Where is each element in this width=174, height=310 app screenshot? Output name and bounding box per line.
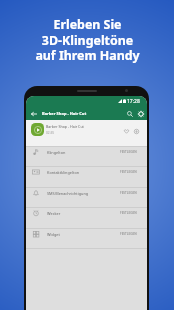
staticText: Barber Shop - Hair Cut <box>46 124 84 129</box>
staticText: Wecker <box>47 211 61 216</box>
button[interactable]: Back <box>28 108 39 119</box>
button[interactable]: Widget <box>26 228 147 248</box>
staticText: FESTLEGEN <box>120 191 137 195</box>
button[interactable]: Barber Shop - Hair Cut <box>26 120 147 146</box>
staticText: Kontaktklingelton <box>47 170 80 175</box>
button[interactable]: Wecker <box>26 207 147 227</box>
button[interactable]: Settings <box>135 108 146 119</box>
button[interactable]: Search <box>124 108 135 119</box>
staticText: Erleben Sie 3D-Klingeltöne auf Ihrem Han… <box>35 16 140 64</box>
button[interactable]: Kontaktklingelton <box>26 166 147 186</box>
staticText: 17:28 <box>127 98 140 105</box>
button[interactable]: Download <box>132 127 141 136</box>
staticText: SMS/Benachrichtigung <box>47 191 89 196</box>
button[interactable]: Klingelton <box>26 146 147 166</box>
staticText: FESTLEGEN <box>120 211 137 215</box>
staticText: 02:35 <box>46 131 55 135</box>
button[interactable]: SMS/Benachrichtigung <box>26 187 147 207</box>
staticText: Widget <box>47 232 60 237</box>
staticText: Klingelton <box>47 150 66 155</box>
button[interactable]: Favorite <box>122 127 131 136</box>
staticText: FESTLEGEN <box>120 232 137 236</box>
staticText: Barber Shop - Hair Cut <box>42 111 87 116</box>
staticText: FESTLEGEN <box>120 150 137 154</box>
staticText: FESTLEGEN <box>120 170 137 174</box>
